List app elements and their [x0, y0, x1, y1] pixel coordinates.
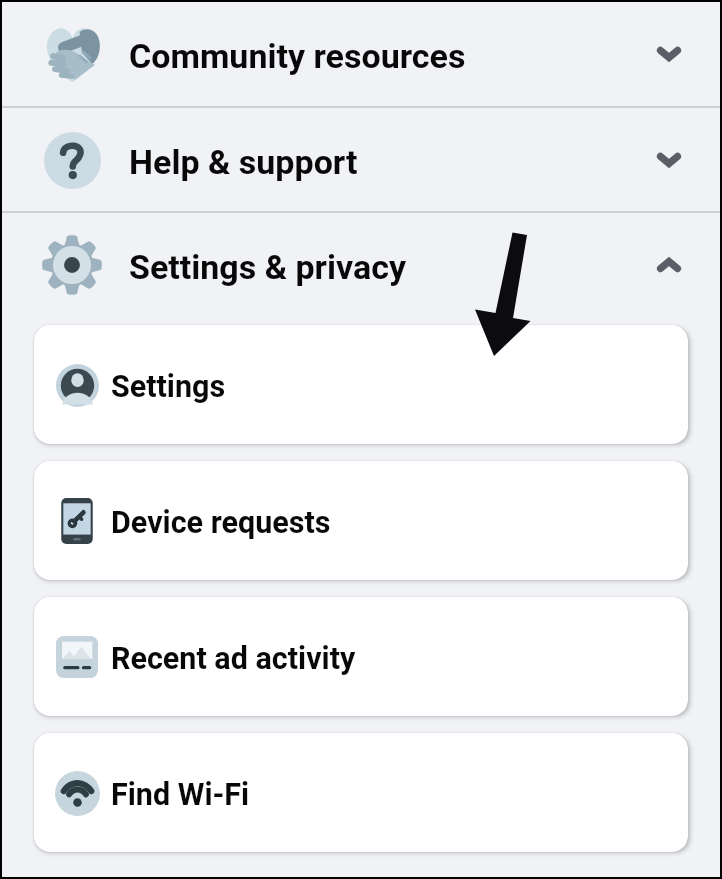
- other: Expand: [653, 144, 685, 176]
- button[interactable]: Recent ad activity: [34, 597, 688, 716]
- staticText: Help & support: [129, 142, 358, 182]
- staticText: Find Wi-Fi: [111, 777, 250, 813]
- staticText: Settings: [111, 369, 226, 405]
- staticText: Recent ad activity: [111, 641, 356, 677]
- staticText: Device requests: [111, 505, 331, 541]
- staticText: Settings & privacy: [129, 247, 407, 287]
- button[interactable]: Community resources: [2, 2, 720, 106]
- other: Collapse: [653, 249, 685, 281]
- button[interactable]: Settings & privacy: [2, 213, 720, 316]
- button[interactable]: Settings: [34, 325, 688, 444]
- button[interactable]: Help & support: [2, 108, 720, 211]
- staticText: Community resources: [129, 36, 466, 76]
- other: Expand: [653, 38, 685, 70]
- button[interactable]: Device requests: [34, 461, 688, 580]
- button[interactable]: Find Wi-Fi: [34, 733, 688, 852]
